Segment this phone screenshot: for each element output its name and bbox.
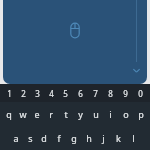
button[interactable]: 8 bbox=[103, 84, 118, 102]
staticText: w bbox=[19, 108, 27, 120]
staticText: a bbox=[13, 132, 19, 144]
button[interactable]: f bbox=[51, 126, 66, 150]
button[interactable]: 3 bbox=[30, 84, 44, 102]
staticText: q bbox=[6, 108, 12, 120]
staticText: l bbox=[132, 132, 135, 144]
staticText: t bbox=[64, 108, 68, 120]
staticText: y bbox=[78, 108, 83, 120]
staticText: g bbox=[71, 132, 77, 144]
button[interactable]: e bbox=[30, 102, 44, 126]
button[interactable]: 6 bbox=[73, 84, 88, 102]
staticText: 6 bbox=[78, 88, 83, 99]
staticText: k bbox=[116, 132, 121, 144]
staticText: 4 bbox=[49, 88, 54, 99]
staticText: 5 bbox=[63, 88, 68, 99]
staticText: 0 bbox=[138, 88, 143, 99]
staticText: 3 bbox=[35, 88, 40, 99]
button[interactable]: 4 bbox=[44, 84, 58, 102]
button[interactable]: 9 bbox=[118, 84, 133, 102]
button[interactable]: a bbox=[9, 126, 23, 150]
staticText: j bbox=[102, 132, 105, 144]
button[interactable]: 1 bbox=[2, 84, 16, 102]
button[interactable]: p bbox=[133, 102, 148, 126]
button[interactable]: w bbox=[16, 102, 30, 126]
button[interactable]: i bbox=[103, 102, 118, 126]
staticText: 9 bbox=[123, 88, 128, 99]
button[interactable]: l bbox=[126, 126, 141, 150]
button[interactable]: Scroll down bbox=[132, 66, 141, 75]
button[interactable]: q bbox=[2, 102, 16, 126]
button[interactable]: Trackpad bbox=[3, 0, 147, 84]
staticText: r bbox=[49, 108, 53, 120]
button[interactable]: h bbox=[81, 126, 96, 150]
button[interactable]: o bbox=[118, 102, 133, 126]
button[interactable]: 2 bbox=[16, 84, 30, 102]
staticText: h bbox=[86, 132, 92, 144]
staticText: u bbox=[93, 108, 99, 120]
button[interactable]: k bbox=[111, 126, 126, 150]
button[interactable]: s bbox=[23, 126, 37, 150]
staticText: e bbox=[34, 108, 40, 120]
staticText: 2 bbox=[21, 88, 26, 99]
button[interactable]: 7 bbox=[88, 84, 103, 102]
button[interactable]: 0 bbox=[133, 84, 148, 102]
staticText: i bbox=[109, 108, 112, 120]
staticText: o bbox=[123, 108, 129, 120]
button[interactable]: t bbox=[58, 102, 73, 126]
button[interactable]: d bbox=[37, 126, 51, 150]
button[interactable]: r bbox=[44, 102, 58, 126]
button[interactable]: 5 bbox=[58, 84, 73, 102]
staticText: d bbox=[41, 132, 47, 144]
staticText: s bbox=[28, 132, 33, 144]
staticText: 7 bbox=[93, 88, 98, 99]
staticText: 8 bbox=[108, 88, 113, 99]
button[interactable]: u bbox=[88, 102, 103, 126]
button[interactable]: j bbox=[96, 126, 111, 150]
button[interactable]: g bbox=[66, 126, 81, 150]
staticText: 1 bbox=[7, 88, 12, 99]
staticText: p bbox=[138, 108, 144, 120]
staticText: f bbox=[57, 132, 61, 144]
button[interactable]: y bbox=[73, 102, 88, 126]
